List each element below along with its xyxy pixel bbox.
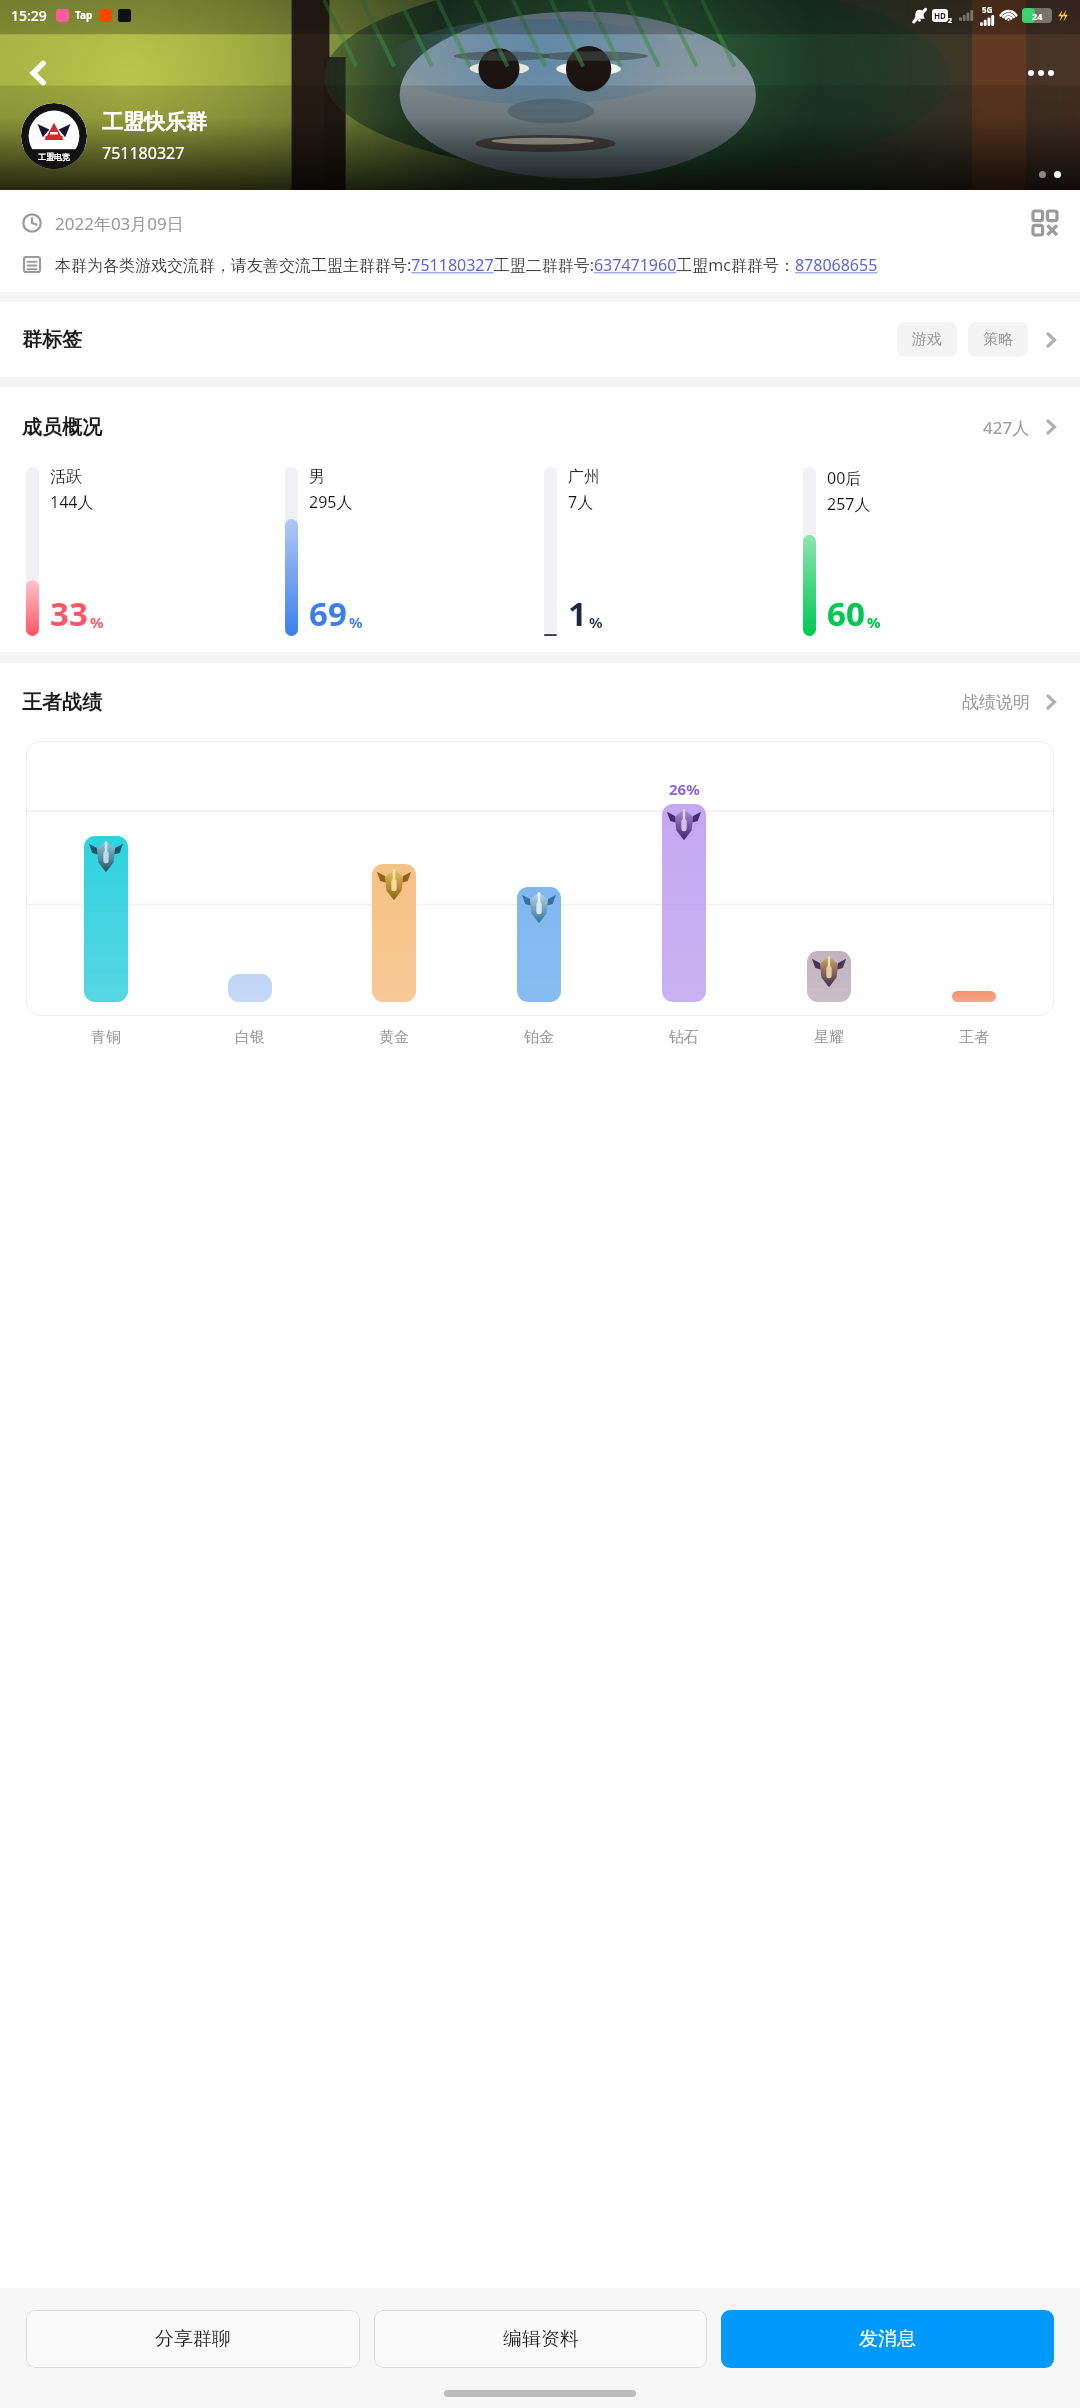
staticText: 编辑资料 [503, 2327, 579, 2351]
staticText: 24 [1032, 10, 1043, 22]
staticText: 广州 [568, 467, 600, 487]
staticText: 2022年03月09日 [55, 212, 184, 235]
staticText: 铂金 [524, 1028, 554, 1047]
staticText: 1 [568, 591, 587, 636]
button[interactable]: 王者战绩 [0, 663, 1080, 741]
button[interactable]: More options [1016, 48, 1066, 98]
staticText: 黄金 [379, 1028, 409, 1047]
button[interactable]: QR code [1028, 206, 1062, 240]
staticText: 男 [309, 467, 325, 487]
staticText: 26% [669, 779, 700, 799]
staticText: % [349, 612, 363, 632]
staticText: 成员概况 [22, 415, 102, 440]
button[interactable]: Back [14, 48, 64, 98]
staticText: 钻石 [669, 1028, 699, 1047]
staticText: 活跃 [50, 467, 82, 487]
staticText: 751180327 [102, 142, 185, 164]
staticText: 王者战绩 [22, 690, 102, 715]
staticText: 295人 [309, 491, 353, 513]
staticText: 60 [827, 591, 865, 636]
staticText: HD [934, 10, 946, 21]
staticText: 33 [50, 591, 88, 636]
staticText: 5G [982, 4, 993, 15]
staticText: 游戏 [912, 330, 942, 349]
button[interactable]: 群标签 [0, 302, 1080, 377]
staticText: 本群为各类游戏交流群，请友善交流工盟主群群号:751180327工盟二群群号:6… [55, 254, 878, 276]
staticText: 7人 [568, 491, 594, 513]
button[interactable]: 发消息 [721, 2310, 1054, 2368]
staticText: 工盟电竞 [38, 152, 70, 162]
staticText: 144人 [50, 491, 94, 513]
staticText: % [589, 612, 603, 632]
staticText: 15:29 [11, 6, 47, 25]
staticText: 星耀 [814, 1028, 844, 1047]
staticText: 69 [309, 591, 347, 636]
staticText: 白银 [235, 1028, 265, 1047]
staticText: 257人 [827, 493, 871, 515]
staticText: 工盟快乐群 [102, 109, 207, 135]
button[interactable]: 工盟电竞 [21, 103, 207, 169]
staticText: 发消息 [859, 2327, 916, 2351]
button[interactable]: 编辑资料 [374, 2310, 707, 2368]
staticText: 00后 [827, 467, 862, 489]
staticText: 2 [948, 16, 953, 26]
staticText: 427人 [983, 416, 1030, 439]
staticText: 分享群聊 [155, 2327, 231, 2351]
staticText: Tap [75, 8, 93, 22]
staticText: 王者 [959, 1028, 989, 1047]
staticText: 战绩说明 [962, 692, 1030, 713]
staticText: 青铜 [91, 1028, 121, 1047]
staticText: 策略 [983, 330, 1013, 349]
staticText: % [90, 612, 104, 632]
button[interactable]: 成员概况 [0, 387, 1080, 467]
staticText: % [867, 612, 881, 632]
button[interactable]: 分享群聊 [26, 2310, 360, 2368]
staticText: 群标签 [22, 327, 82, 352]
